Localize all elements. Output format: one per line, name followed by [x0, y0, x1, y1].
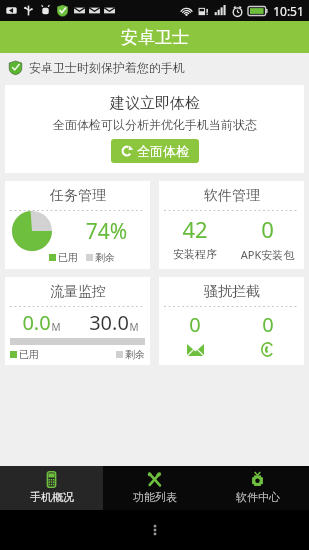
button[interactable]: 任务管理	[5, 181, 150, 269]
button[interactable]: 手机概况	[0, 466, 103, 510]
staticText: 安卓卫士时刻保护着您的手机	[29, 60, 185, 75]
staticText: 手机概况	[30, 490, 74, 504]
staticText: 全面体检	[137, 143, 189, 159]
button[interactable]: 功能列表	[103, 466, 206, 510]
button[interactable]: 软件中心	[206, 466, 309, 510]
staticText: 42	[182, 214, 208, 244]
staticText: 建议立即体检	[110, 94, 200, 113]
button[interactable]: 软件管理	[159, 181, 304, 269]
staticText: 任务管理	[50, 187, 106, 205]
staticText: M	[129, 320, 139, 334]
staticText: 10:51	[273, 3, 304, 19]
staticText: APK安装包	[231, 247, 304, 262]
button[interactable]: 建议立即体检	[5, 85, 304, 173]
staticText: 0	[262, 311, 274, 338]
staticText: 软件管理	[204, 187, 260, 205]
button[interactable]: 流量监控	[5, 277, 150, 365]
staticText: 功能列表	[133, 490, 177, 504]
staticText: 剩余	[125, 348, 145, 361]
button[interactable]: 骚扰拦截	[159, 277, 304, 365]
button[interactable]: 全面体检	[111, 139, 199, 163]
staticText: M	[51, 320, 61, 334]
staticText: 软件中心	[236, 490, 280, 504]
staticText: 流量监控	[50, 283, 106, 301]
staticText: 剩余	[95, 251, 115, 264]
staticText: 全面体检可以分析并优化手机当前状态	[53, 117, 257, 132]
staticText: 已用	[58, 251, 78, 264]
staticText: 0	[261, 214, 274, 244]
staticText: 30.0	[89, 309, 129, 336]
staticText: 已用	[19, 348, 39, 361]
staticText: 0	[189, 311, 201, 338]
staticText: 安装程序	[159, 247, 231, 261]
staticText: 安卓卫士	[121, 27, 189, 48]
staticText: 0.0	[22, 309, 51, 336]
staticText: 74%	[63, 217, 150, 246]
staticText: 骚扰拦截	[204, 283, 260, 301]
